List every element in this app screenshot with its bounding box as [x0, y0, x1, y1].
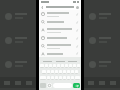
button[interactable]: [63, 70, 66, 74]
other: Insert suggestion: [76, 21, 79, 24]
other: Insert suggestion: [76, 13, 79, 16]
button[interactable]: [5, 54, 31, 74]
button[interactable]: Shift: [40, 76, 46, 80]
other: Insert suggestion: [76, 37, 79, 40]
button[interactable]: [71, 76, 74, 80]
button[interactable]: [49, 64, 52, 68]
button[interactable]: [59, 70, 62, 74]
button[interactable]: Send: [73, 83, 80, 88]
other: Insert suggestion: [76, 52, 79, 55]
button[interactable]: [71, 70, 74, 74]
button[interactable]: [69, 64, 72, 68]
button[interactable]: [53, 64, 56, 68]
button[interactable]: Navigation item: [3, 80, 11, 86]
button[interactable]: Navigation item: [98, 80, 106, 86]
button[interactable]: [5, 30, 31, 50]
button[interactable]: [77, 64, 80, 68]
button[interactable]: Navigation item: [109, 80, 117, 86]
button[interactable]: [47, 76, 50, 80]
button[interactable]: [59, 76, 62, 80]
button[interactable]: Navigation item: [14, 80, 22, 86]
button[interactable]: [47, 70, 50, 74]
button[interactable]: [73, 64, 76, 68]
button[interactable]: [67, 76, 70, 80]
button[interactable]: [42, 70, 46, 74]
button[interactable]: Search: [76, 6, 79, 9]
button[interactable]: Back: [41, 4, 79, 10]
button[interactable]: Insert suggestion: [39, 34, 81, 42]
other: Insert suggestion: [76, 45, 79, 48]
other: Insert suggestion: [76, 29, 79, 32]
button[interactable]: [63, 76, 66, 80]
button[interactable]: [65, 64, 68, 68]
button[interactable]: Insert suggestion: [39, 10, 81, 18]
button[interactable]: [51, 70, 54, 74]
button[interactable]: [75, 70, 78, 74]
button[interactable]: Insert suggestion: [39, 18, 81, 26]
button[interactable]: Navigation item: [84, 0, 120, 90]
button[interactable]: Backspace: [75, 76, 80, 80]
button[interactable]: Insert suggestion: [39, 50, 81, 57]
button[interactable]: [61, 64, 64, 68]
other: Back: [41, 6, 44, 9]
button[interactable]: [51, 76, 54, 80]
button[interactable]: [55, 70, 58, 74]
button[interactable]: Navigation item: [25, 80, 33, 86]
button[interactable]: [67, 70, 70, 74]
button[interactable]: [45, 64, 48, 68]
button[interactable]: [5, 6, 31, 26]
button[interactable]: [40, 64, 44, 68]
button[interactable]: [89, 6, 115, 26]
button[interactable]: Insert suggestion: [39, 42, 81, 50]
button[interactable]: [89, 54, 115, 74]
button[interactable]: [55, 76, 58, 80]
button[interactable]: Emoji: [47, 83, 52, 88]
button[interactable]: [89, 30, 115, 50]
button[interactable]: Navigation item: [0, 0, 36, 90]
button[interactable]: Navigation item: [87, 80, 95, 86]
button[interactable]: [53, 83, 72, 88]
button[interactable]: Insert suggestion: [39, 26, 81, 34]
button[interactable]: [57, 64, 60, 68]
